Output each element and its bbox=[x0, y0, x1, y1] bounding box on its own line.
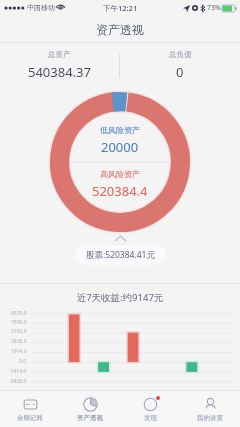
staticText: 7656.0 bbox=[11, 319, 27, 326]
staticText: 73% bbox=[207, 3, 221, 13]
button[interactable]: 资产透视 bbox=[60, 391, 120, 427]
staticText: 发现 bbox=[144, 414, 157, 422]
staticText: 中国移动 bbox=[27, 3, 55, 12]
staticText: 资产透视 bbox=[77, 414, 103, 422]
staticText: 3828.0 bbox=[11, 338, 27, 345]
other: 余额记账 bbox=[23, 397, 38, 412]
staticText: 9570.0 bbox=[11, 310, 27, 317]
button[interactable]: 我的设置 bbox=[180, 391, 240, 427]
staticText: 我的设置 bbox=[197, 414, 223, 422]
staticText: 0.0 bbox=[19, 358, 27, 365]
staticText: 低风险资产 bbox=[100, 125, 140, 135]
staticText: 0 bbox=[176, 63, 184, 81]
other: 发现 bbox=[143, 397, 158, 412]
button[interactable]: 股票:520384.41元 bbox=[75, 245, 166, 265]
staticText: 5742.0 bbox=[11, 328, 27, 335]
staticText: 余额记账 bbox=[17, 414, 43, 422]
staticText: -3828.0 bbox=[9, 378, 27, 385]
staticText: 高风险资产 bbox=[100, 169, 140, 179]
staticText: 20000 bbox=[101, 138, 139, 156]
other: 我的设置 bbox=[203, 397, 218, 412]
button[interactable]: 余额记账 bbox=[0, 391, 60, 427]
staticText: 1914.0 bbox=[11, 348, 27, 355]
staticText: 520384.4 bbox=[92, 182, 148, 200]
other: 资产透视 bbox=[83, 397, 98, 412]
staticText: 总负债 bbox=[169, 50, 192, 59]
staticText: 资产透视 bbox=[96, 22, 144, 37]
staticText: 股票:520384.41元 bbox=[86, 249, 155, 261]
staticText: -1914.0 bbox=[9, 368, 27, 375]
staticText: 下午12:21 bbox=[103, 3, 138, 13]
staticText: 总资产 bbox=[48, 50, 71, 59]
staticText: 540384.37 bbox=[28, 63, 91, 81]
button[interactable]: 发现 bbox=[120, 391, 180, 427]
staticText: 近7天收益:约9147元 bbox=[0, 291, 240, 304]
